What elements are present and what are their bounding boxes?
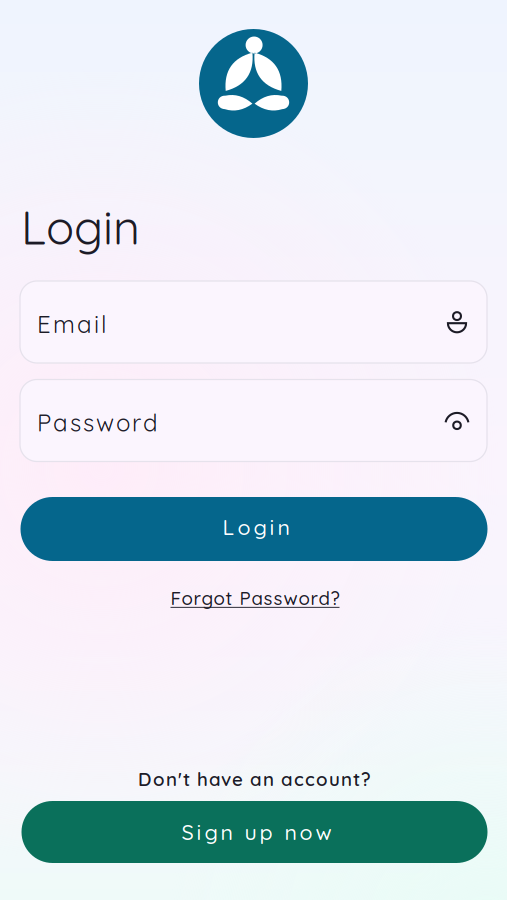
staticText: Don't have an account? [138,767,371,791]
staticText: Forgot Password? [170,586,339,610]
staticText: Password [37,407,158,437]
button[interactable]: Forgot Password? [145,581,365,615]
staticText: Sign up now [181,819,331,845]
staticText: Email [37,309,107,339]
button[interactable]: Sign up now [21,801,487,863]
staticText: Login [222,514,289,540]
staticText: Login [21,198,140,256]
button[interactable]: Login [20,497,487,561]
